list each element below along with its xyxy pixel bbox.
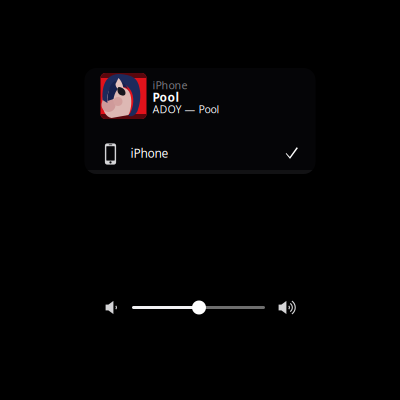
button[interactable]: Minimum volume xyxy=(106,299,119,316)
button[interactable]: Maximum volume xyxy=(278,299,296,316)
staticText: Pool xyxy=(152,89,179,105)
staticText: iPhone xyxy=(152,78,187,92)
button[interactable]: Volume xyxy=(132,300,265,314)
staticText: iPhone xyxy=(130,145,168,161)
staticText: ADOY — Pool xyxy=(152,102,219,116)
button[interactable]: iPhone xyxy=(84,132,315,174)
button[interactable]: iPhone xyxy=(84,68,315,132)
